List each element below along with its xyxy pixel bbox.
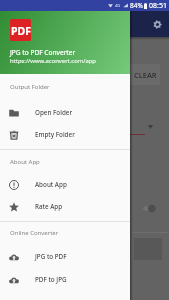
staticText: JPG to PDF — [35, 252, 67, 261]
staticText: 08:51 — [149, 1, 167, 11]
staticText: Rate App — [35, 202, 63, 211]
button[interactable]: Open Folder — [0, 101, 130, 124]
staticText: About App — [10, 158, 40, 166]
staticText: Output Folder — [10, 83, 50, 91]
staticText: Open Folder — [35, 108, 73, 117]
button[interactable]: About App — [0, 173, 130, 196]
button[interactable]: PDF to JPG — [0, 268, 130, 291]
staticText: CLEAR — [134, 70, 157, 80]
button[interactable]: Settings — [148, 15, 166, 33]
button[interactable]: JPG to PDF — [0, 245, 130, 268]
staticText: 4G — [115, 3, 121, 8]
button[interactable]: Empty Folder — [0, 123, 130, 146]
staticText: PDF — [11, 24, 31, 38]
staticText: https://www.aconvert.com/app — [10, 57, 96, 65]
staticText: 84% — [130, 1, 143, 10]
staticText: PDF to JPG — [35, 275, 67, 284]
staticText: Online Converter — [10, 229, 59, 237]
staticText: About App — [35, 180, 67, 189]
staticText: JPG to PDF Converter — [10, 48, 76, 57]
staticText: Empty Folder — [35, 130, 75, 139]
button[interactable]: Rate App — [0, 195, 130, 218]
button[interactable]: CLEAR — [126, 64, 160, 85]
